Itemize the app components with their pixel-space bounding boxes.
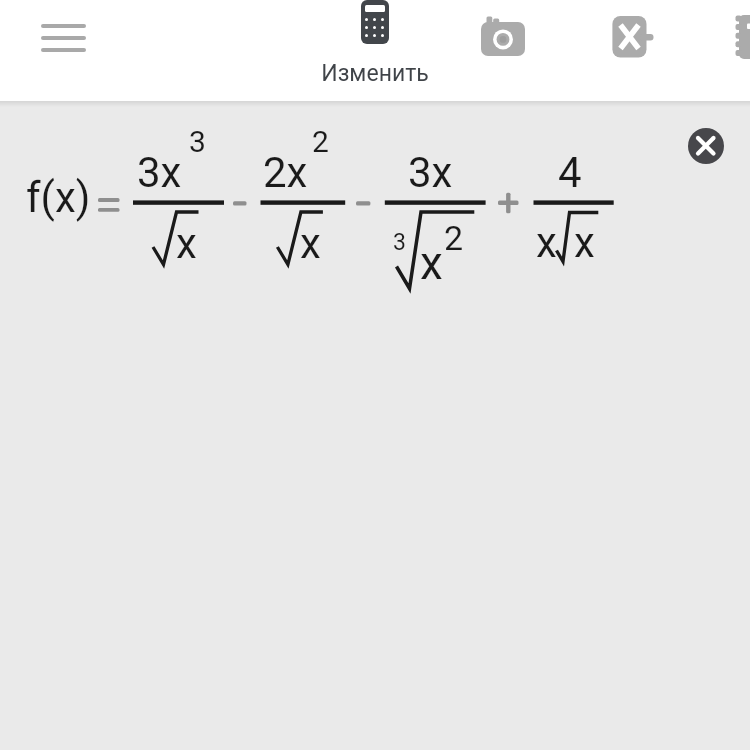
button[interactable]	[688, 128, 724, 164]
staticText: 2	[444, 218, 464, 258]
button[interactable]	[41, 18, 86, 56]
staticText: 2x	[263, 148, 308, 197]
button[interactable]	[478, 12, 528, 60]
button[interactable]	[731, 10, 750, 62]
button[interactable]	[608, 10, 658, 62]
staticText: x	[536, 218, 557, 267]
staticText: 3x	[408, 148, 453, 197]
staticText: 4	[558, 148, 582, 197]
staticText: x	[176, 219, 197, 268]
staticText: f(x)	[26, 173, 91, 222]
staticText: 3	[189, 124, 206, 159]
staticText: 3	[393, 229, 406, 256]
button[interactable]: Изменить	[310, 0, 440, 92]
staticText: Изменить	[310, 60, 440, 87]
staticText: x	[300, 219, 321, 268]
staticText: 2	[312, 124, 329, 159]
staticText: x	[574, 218, 595, 267]
staticText: 3x	[137, 148, 182, 197]
staticText: x	[420, 236, 443, 290]
